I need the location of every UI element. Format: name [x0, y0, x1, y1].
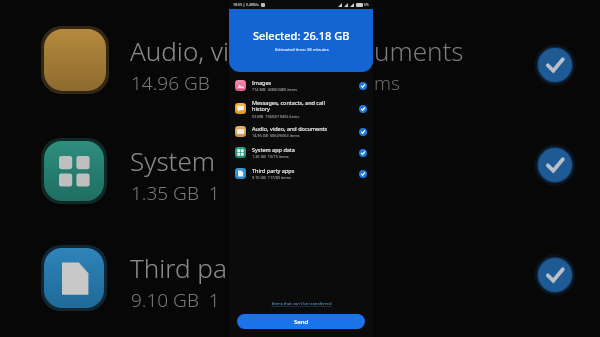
- staticText: Items that can't be transferred: [271, 301, 332, 307]
- button[interactable]: Images: [229, 75, 373, 96]
- button[interactable]: Audio, video, and documents: [229, 121, 373, 142]
- button[interactable]: Items that can't be transferred: [229, 299, 373, 309]
- button[interactable]: Messages, contacts, and call history: [229, 96, 373, 121]
- button[interactable]: System app data: [229, 142, 373, 163]
- staticText: Images: [252, 79, 272, 86]
- staticText: 1.35 GB 15/15 items: [252, 154, 289, 159]
- button[interactable]: Third party apps: [229, 163, 373, 184]
- staticText: System app data: [252, 146, 295, 153]
- staticText: 14.96 GB: [131, 70, 210, 96]
- staticText: uments: [374, 33, 464, 68]
- staticText: 9.10 GB 1: [131, 287, 220, 313]
- staticText: 1.35 GB 1: [131, 180, 220, 206]
- staticText: Third party apps: [252, 167, 295, 174]
- staticText: 714 MB 3480/3480 items: [252, 87, 298, 92]
- staticText: Audio, vi: [130, 33, 230, 68]
- staticText: Messages, contacts, and call history: [252, 99, 325, 113]
- staticText: Selected: 26.18 GB: [253, 28, 350, 43]
- staticText: Audio, video, and documents: [252, 125, 328, 132]
- staticText: 53 MB 19492/19492 items: [252, 114, 300, 119]
- staticText: 14.96 GB 6063/6063 items: [252, 133, 300, 138]
- staticText: 9.10 GB 117/83 items: [252, 175, 291, 180]
- staticText: Estimated time: 38 minutes: [275, 47, 329, 53]
- staticText: Send: [294, 318, 309, 326]
- button[interactable]: Send: [237, 314, 365, 329]
- staticText: 18:55 | 5.4KB/s: [233, 2, 259, 7]
- staticText: System: [130, 143, 215, 178]
- staticText: 5%: [364, 2, 369, 7]
- staticText: ms: [374, 70, 400, 96]
- staticText: Third pa: [130, 250, 227, 285]
